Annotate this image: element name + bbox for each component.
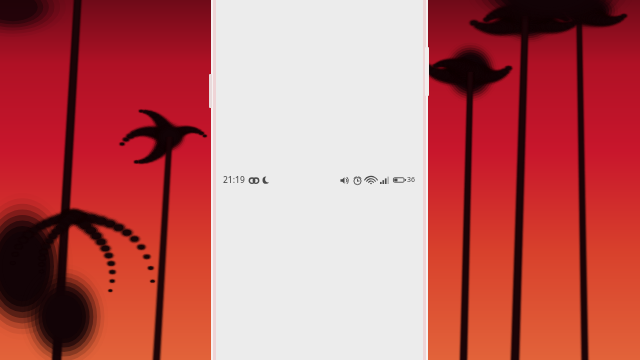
button[interactable]: Power button: [425, 47, 429, 96]
button[interactable]: Volume button: [209, 74, 212, 108]
staticText: 36: [407, 175, 416, 185]
staticText: 21:19: [223, 174, 245, 186]
